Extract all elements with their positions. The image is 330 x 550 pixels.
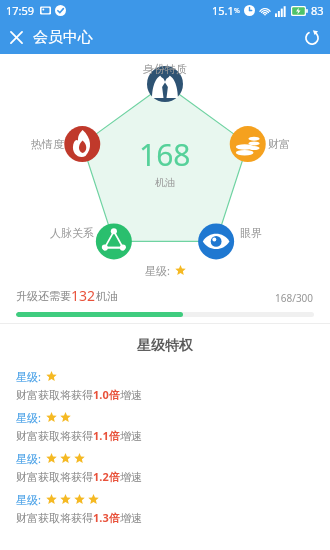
staticText: 1.0倍 bbox=[93, 387, 120, 402]
staticText: 星级: bbox=[16, 410, 41, 425]
staticText: 星级: bbox=[145, 263, 170, 278]
staticText: 财富获取将获得 bbox=[16, 388, 93, 402]
staticText: 升级还需要 bbox=[16, 289, 71, 303]
staticText: 眼界 bbox=[240, 226, 262, 240]
staticText: 增速 bbox=[120, 511, 142, 525]
staticText: 星级: bbox=[16, 369, 41, 384]
button[interactable]: Refresh bbox=[294, 24, 330, 52]
staticText: 财富获取将获得 bbox=[16, 511, 93, 525]
staticText: 17:59 bbox=[6, 3, 35, 18]
staticText: 热情度 bbox=[31, 137, 64, 151]
staticText: 15.1 bbox=[212, 3, 234, 18]
staticText: 83 bbox=[311, 3, 324, 18]
staticText: 人脉关系 bbox=[50, 226, 94, 240]
staticText: 星级: bbox=[16, 492, 41, 507]
staticText: 星级特权 bbox=[0, 337, 330, 355]
button[interactable]: 星级: bbox=[0, 447, 330, 488]
staticText: 身份特质 bbox=[143, 62, 187, 76]
staticText: 增速 bbox=[120, 470, 142, 484]
staticText: 1.1倍 bbox=[93, 428, 120, 443]
staticText: 机油 bbox=[96, 289, 118, 303]
staticText: 星级: bbox=[16, 451, 41, 466]
staticText: % bbox=[234, 6, 240, 16]
staticText: 增速 bbox=[120, 429, 142, 443]
button[interactable]: 星级: bbox=[0, 365, 330, 406]
staticText: 会员中心 bbox=[33, 28, 93, 47]
staticText: 1.3倍 bbox=[93, 510, 120, 525]
staticText: 1.2倍 bbox=[93, 469, 120, 484]
staticText: 财富 bbox=[268, 137, 290, 151]
staticText: 财富获取将获得 bbox=[16, 470, 93, 484]
staticText: 机油 bbox=[155, 176, 175, 189]
button[interactable]: 星级: bbox=[0, 406, 330, 447]
staticText: 财富获取将获得 bbox=[16, 429, 93, 443]
staticText: 168/300 bbox=[275, 291, 314, 305]
staticText: 增速 bbox=[120, 388, 142, 402]
staticText: 132 bbox=[71, 286, 96, 305]
button[interactable]: 星级: bbox=[0, 488, 330, 529]
button[interactable]: Close bbox=[0, 24, 33, 51]
staticText: 168 bbox=[139, 134, 191, 175]
